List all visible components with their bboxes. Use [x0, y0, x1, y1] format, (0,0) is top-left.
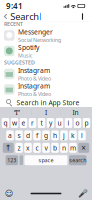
button[interactable] — [19, 155, 23, 165]
staticText: w — [12, 119, 17, 127]
staticText: g — [44, 131, 48, 140]
staticText: ☺ — [5, 189, 13, 198]
button[interactable]: r — [29, 118, 36, 128]
staticText: In — [72, 108, 78, 117]
staticText: e — [21, 119, 25, 127]
button[interactable]: w — [11, 118, 18, 128]
button[interactable]: o — [74, 118, 81, 128]
staticText: d — [26, 131, 30, 140]
button[interactable]: In — [61, 107, 90, 117]
button[interactable]: t — [38, 118, 45, 128]
staticText: Photo & Video — [18, 75, 51, 82]
button[interactable]: n — [60, 143, 68, 153]
button[interactable]: Clear text — [79, 12, 86, 21]
button[interactable]: “I” — [2, 107, 31, 117]
button[interactable]: j — [60, 130, 68, 140]
button[interactable]: g — [42, 130, 50, 140]
staticText: c — [35, 143, 38, 152]
staticText: Search in App Store — [16, 98, 79, 107]
staticText: Music — [18, 52, 33, 59]
staticText: z — [17, 143, 20, 152]
button[interactable]: Instagram — [0, 82, 92, 97]
staticText: i — [67, 119, 69, 127]
staticText: I — [45, 108, 47, 117]
staticText: SUGGESTED — [4, 59, 35, 66]
button[interactable]: Dictate — [78, 189, 88, 198]
button[interactable]: ↑ — [3, 143, 14, 153]
button[interactable]: m — [69, 143, 77, 153]
button[interactable]: s — [15, 130, 23, 140]
button[interactable]: x — [24, 143, 32, 153]
staticText: b — [53, 143, 57, 152]
button[interactable]: y — [47, 118, 54, 128]
staticText: m — [70, 143, 76, 152]
staticText: f — [36, 131, 38, 140]
button[interactable]: b — [51, 143, 59, 153]
button[interactable]: a — [6, 130, 14, 140]
button[interactable]: Back — [0, 11, 10, 22]
staticText: o — [75, 119, 79, 127]
button[interactable]: space — [24, 155, 67, 165]
button[interactable]: v — [42, 143, 50, 153]
staticText: l — [81, 131, 83, 140]
button[interactable]: p — [83, 118, 90, 128]
button[interactable]: search — [69, 155, 86, 165]
button[interactable]: q — [2, 118, 9, 128]
button[interactable]: u — [56, 118, 63, 128]
staticText: a — [8, 131, 12, 140]
staticText: q — [3, 119, 7, 127]
button[interactable]: Emoji — [4, 189, 14, 198]
button[interactable]: l — [78, 130, 86, 140]
button[interactable]: I — [31, 107, 60, 117]
staticText: u — [57, 119, 61, 127]
button[interactable]: Instagram — [0, 66, 92, 82]
staticText: search — [69, 157, 86, 164]
staticText: Photo & Video — [18, 90, 51, 97]
staticText: × — [81, 142, 86, 153]
staticText: Messenger — [18, 27, 53, 36]
staticText: 9:41 — [6, 1, 23, 11]
staticText: Spotify — [18, 43, 39, 52]
staticText: t — [40, 119, 42, 127]
staticText: r — [31, 119, 34, 127]
staticText: k — [71, 131, 75, 140]
staticText: s — [17, 131, 20, 140]
staticText: Instagram — [18, 66, 50, 75]
button[interactable]: × — [78, 143, 89, 153]
button[interactable]: c — [33, 143, 41, 153]
button[interactable]: Messenger — [0, 28, 92, 43]
button[interactable]: z — [15, 143, 23, 153]
staticText: p — [84, 119, 88, 127]
staticText: y — [49, 119, 52, 127]
staticText: Search — [10, 10, 39, 23]
staticText: RECENT — [4, 20, 23, 27]
staticText: v — [44, 143, 47, 152]
staticText: 123 — [7, 157, 16, 164]
button[interactable]: h — [51, 130, 59, 140]
staticText: space — [38, 157, 53, 164]
staticText: n — [62, 143, 66, 152]
button[interactable]: e — [20, 118, 27, 128]
staticText: j — [63, 131, 65, 140]
button[interactable]: f — [33, 130, 41, 140]
button[interactable]: Search in App Store — [0, 97, 92, 108]
staticText: ↑ — [5, 143, 12, 152]
button[interactable]: Spotify — [0, 43, 92, 59]
staticText: h — [53, 131, 57, 140]
staticText: Instagram — [18, 81, 50, 90]
staticText: Social Networking — [18, 36, 61, 43]
staticText: “I” — [14, 108, 20, 117]
button[interactable]: 123 — [5, 155, 18, 165]
button[interactable]: i — [65, 118, 72, 128]
button[interactable]: d — [24, 130, 32, 140]
staticText: 🎤 — [78, 189, 88, 198]
staticText: x — [26, 143, 30, 152]
button[interactable]: k — [69, 130, 77, 140]
